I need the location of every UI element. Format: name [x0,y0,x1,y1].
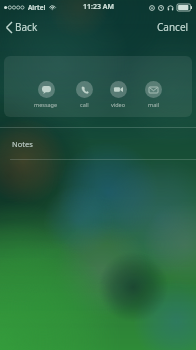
button[interactable]: Back [0,16,46,38]
button[interactable]: call [72,80,97,109]
button[interactable]: message [30,80,62,109]
staticText: message [34,101,58,108]
staticText: Airtel [28,3,46,12]
staticText: video [111,101,126,108]
button[interactable]: Notes [0,128,196,159]
staticText: mail [148,101,160,108]
button[interactable]: video [106,80,131,109]
staticText: call [80,101,89,108]
staticText: Back [15,20,38,34]
button[interactable]: Cancel [149,16,196,38]
staticText: Cancel [157,20,189,34]
button[interactable]: mail [141,80,166,109]
staticText: Notes [12,139,33,149]
staticText: 11:23 AM [83,2,114,12]
